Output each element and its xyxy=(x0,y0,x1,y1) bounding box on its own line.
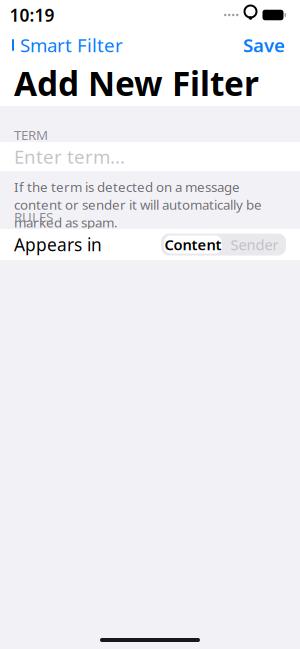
staticText: Sender xyxy=(230,235,278,254)
staticText: If the term is detected on a message con… xyxy=(14,178,262,231)
staticText: Smart Filter xyxy=(20,33,123,57)
staticText: TERM xyxy=(14,126,48,144)
staticText: Add New Filter xyxy=(14,61,259,105)
button[interactable]: Save xyxy=(243,27,300,63)
staticText: Appears in xyxy=(14,233,102,256)
staticText: Save xyxy=(243,33,285,57)
staticText: RULES xyxy=(14,208,53,226)
button[interactable]: Sender xyxy=(224,233,285,255)
staticText: Enter term... xyxy=(14,144,125,169)
staticText: Content xyxy=(164,235,221,254)
button[interactable]: Content xyxy=(162,233,224,255)
staticText: 10:19 xyxy=(9,3,54,26)
button[interactable]: Smart Filter xyxy=(0,27,123,63)
